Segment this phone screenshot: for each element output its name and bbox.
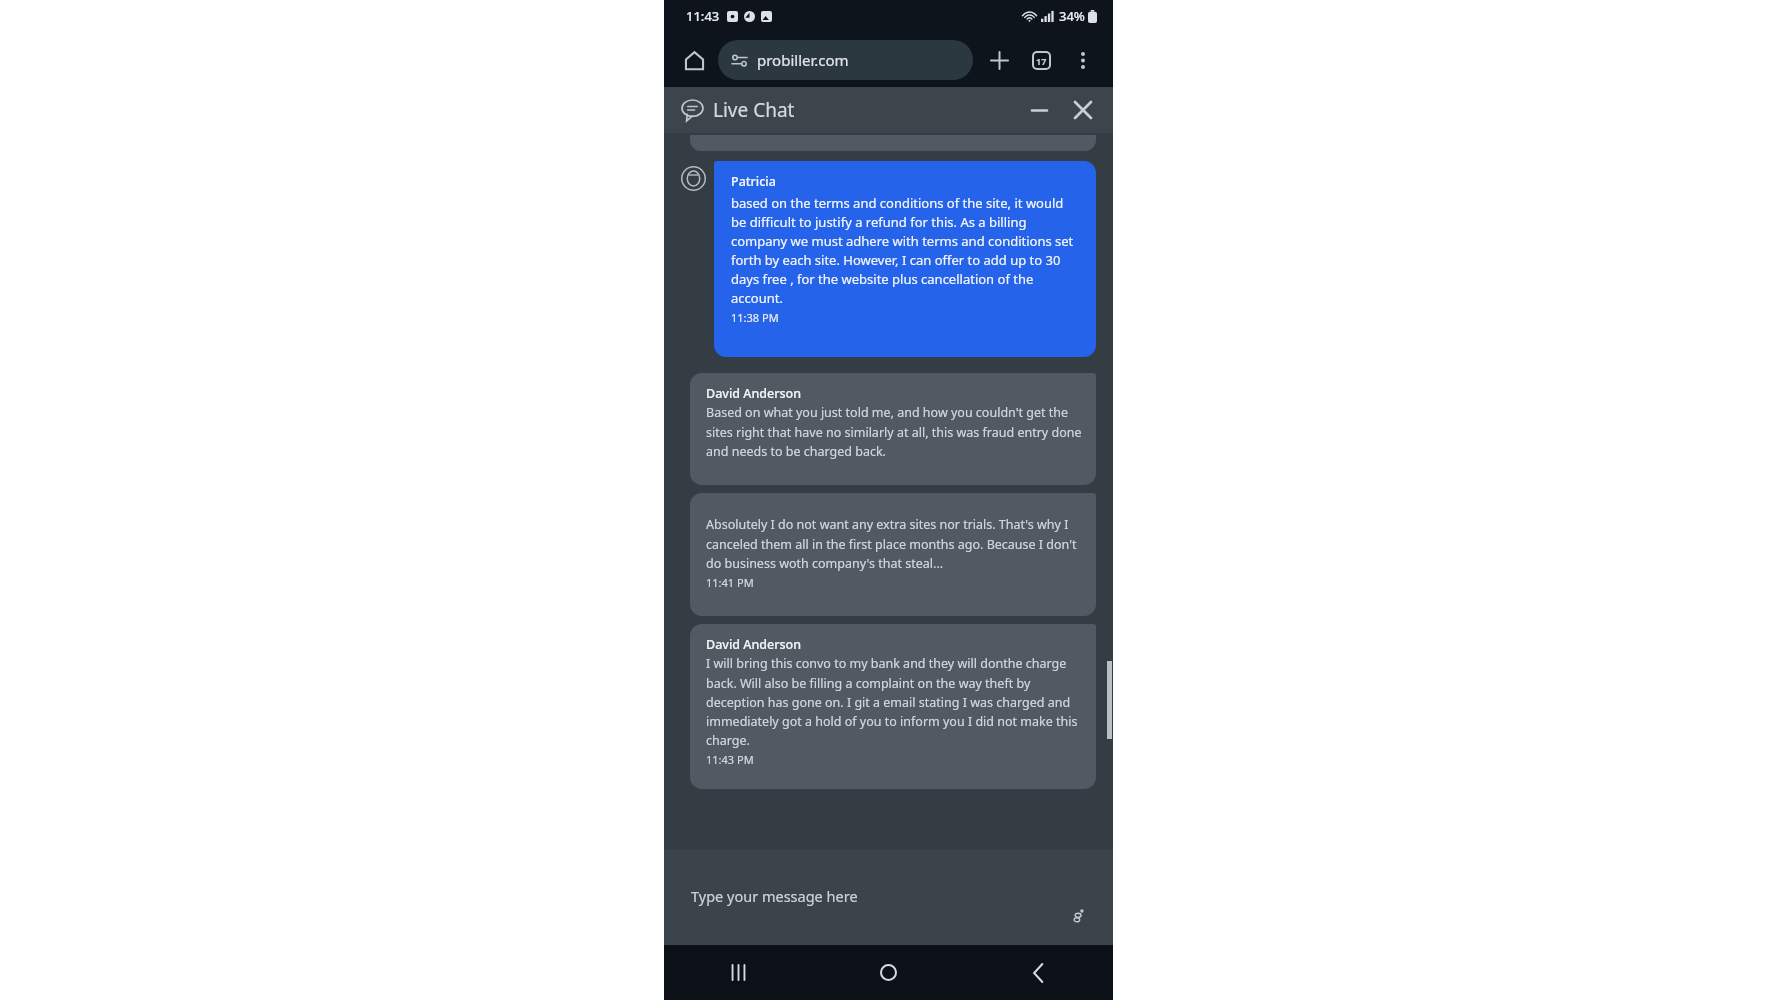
button[interactable]: Tabs [1021, 40, 1061, 80]
staticText: 11:43 [686, 7, 720, 25]
staticText: I will bring this convo to my bank and t… [706, 655, 1082, 749]
staticText: 11:43 PM [706, 752, 754, 767]
staticText: David Anderson [706, 636, 802, 653]
button[interactable]: Minimize [1021, 92, 1057, 128]
button[interactable]: New tab [979, 40, 1019, 80]
button[interactable]: More options [1063, 40, 1103, 80]
button[interactable]: Back [963, 945, 1113, 1000]
staticText: probiller.com [757, 50, 849, 70]
button[interactable]: Patricia [714, 161, 1096, 357]
button[interactable]: Home [813, 945, 963, 1000]
staticText: 17 [1036, 55, 1047, 67]
button[interactable]: Close [1065, 92, 1101, 128]
button[interactable]: Attach [1063, 901, 1093, 931]
staticText: based on the terms and conditions of the… [731, 194, 1082, 307]
button[interactable]: Recents [664, 945, 813, 1000]
button[interactable]: Home [674, 40, 714, 80]
staticText: Type your message here [691, 886, 858, 906]
staticText: 11:41 PM [706, 575, 754, 590]
button[interactable]: probiller.com [718, 40, 973, 80]
staticText: 11:38 PM [731, 310, 779, 325]
staticText: David Anderson [706, 385, 802, 402]
button[interactable]: David Anderson [690, 624, 1096, 789]
staticText: Based on what you just told me, and how … [706, 404, 1082, 460]
staticText: Patricia [731, 173, 776, 190]
staticText: Absolutely I do not want any extra sites… [706, 516, 1082, 572]
button[interactable]: David Anderson [690, 373, 1096, 485]
staticText: Live Chat [713, 97, 795, 123]
button[interactable]: Absolutely I do not want any extra sites… [690, 493, 1096, 616]
staticText: 34% [1059, 7, 1085, 25]
